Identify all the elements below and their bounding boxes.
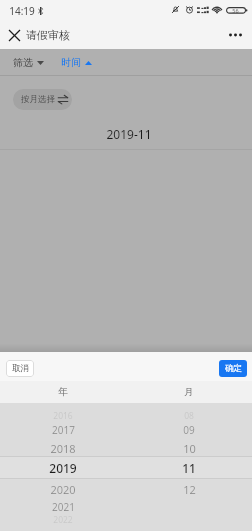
staticText: 2021 (52, 500, 75, 514)
staticText: 11 (182, 460, 196, 476)
staticText: 2020 (50, 482, 76, 497)
staticText: 2018 (50, 441, 76, 456)
button[interactable]: 时间 (61, 56, 92, 69)
button[interactable]: 筛选 (13, 56, 44, 69)
button[interactable]: Close (3, 24, 25, 46)
button[interactable]: 取消 (6, 360, 34, 377)
staticText: 确定 (225, 363, 242, 374)
staticText: 09 (183, 423, 195, 437)
staticText: 月 (184, 386, 194, 398)
staticText: 12 (183, 482, 196, 497)
staticText: 请假审核 (26, 28, 70, 42)
staticText: 2022 (53, 514, 73, 526)
staticText: 08 (184, 410, 194, 422)
staticText: 时间 (61, 56, 81, 69)
button[interactable]: 按月选择 (13, 89, 72, 110)
button[interactable]: More options (224, 24, 246, 46)
staticText: 10 (183, 441, 196, 456)
staticText: 2019 (49, 460, 77, 476)
staticText: 2016 (53, 410, 73, 422)
staticText: 取消 (12, 363, 29, 374)
staticText: 筛选 (13, 56, 33, 69)
button[interactable]: 确定 (219, 360, 247, 377)
staticText: 2017 (52, 423, 75, 437)
staticText: 14:19 (9, 4, 35, 18)
staticText: 年 (58, 386, 68, 398)
staticText: 2019-11 (106, 126, 152, 142)
staticText: 按月选择 (21, 94, 55, 105)
staticText: 56 (232, 7, 239, 14)
